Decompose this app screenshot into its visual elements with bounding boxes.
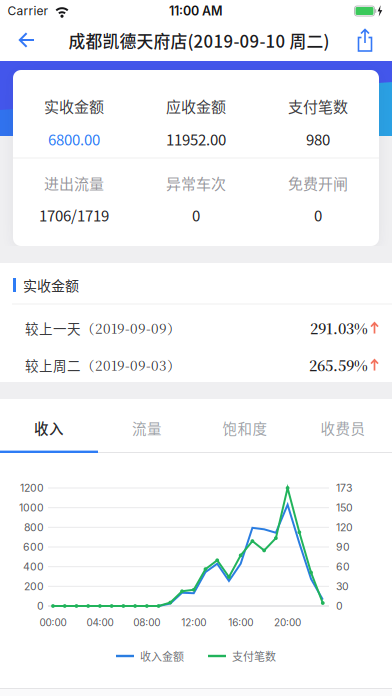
staticText: 异常车次 [166, 172, 226, 194]
button[interactable]: 饱和度 [196, 401, 294, 455]
staticText: 00:00 [39, 616, 66, 629]
staticText: 免费开闸 [288, 172, 348, 194]
staticText: 收费员 [320, 417, 365, 438]
staticText: 291.03% [310, 318, 368, 338]
staticText: 400 [23, 560, 44, 573]
staticText: 支付笔数 [288, 95, 348, 117]
staticText: 收入 [34, 417, 64, 438]
button[interactable]: Back [0, 21, 44, 61]
staticText: 08:00 [133, 616, 160, 629]
staticText: 600 [23, 541, 44, 553]
staticText: 0 [37, 600, 44, 612]
staticText: 90 [336, 541, 350, 553]
staticText: Carrier [7, 4, 48, 18]
staticText: 150 [336, 501, 353, 514]
staticText: 实收金额 [44, 95, 104, 117]
staticText: 1200 [20, 482, 44, 494]
staticText: 支付笔数 [232, 648, 276, 664]
staticText: 较上一天 [25, 318, 81, 338]
staticText: 收入金额 [140, 648, 184, 664]
staticText: 200 [24, 580, 44, 593]
staticText: 较上周二 [25, 355, 81, 375]
staticText: 04:00 [86, 616, 113, 629]
staticText: 进出流量 [44, 172, 104, 194]
staticText: 16:00 [228, 616, 253, 629]
staticText: 6800.00 [48, 128, 100, 150]
button[interactable]: 收费员 [294, 401, 392, 455]
staticText: 173 [336, 482, 352, 494]
button[interactable]: 流量 [98, 401, 196, 455]
button[interactable]: Share [345, 21, 385, 61]
staticText: 800 [24, 521, 44, 534]
staticText: 实收金额 [23, 275, 79, 295]
button[interactable]: 收入 [0, 401, 98, 455]
staticText: 12:00 [181, 616, 206, 629]
staticText: 30 [336, 580, 349, 593]
staticText: 980 [306, 128, 330, 150]
staticText: 1706/1719 [39, 204, 109, 226]
staticText: 0 [192, 204, 200, 226]
staticText: 0 [336, 600, 343, 612]
staticText: 11:00 AM [169, 3, 223, 18]
staticText: （2019-09-03） [81, 355, 181, 375]
staticText: 流量 [132, 417, 162, 438]
staticText: 成都凯德天府店(2019-09-10 周二) [68, 28, 329, 53]
staticText: 20:00 [274, 616, 301, 629]
staticText: 11952.00 [166, 128, 226, 150]
staticText: 60 [336, 560, 350, 573]
staticText: 1000 [19, 501, 44, 514]
staticText: 265.59% [309, 355, 368, 375]
staticText: 0 [314, 204, 322, 226]
staticText: 应收金额 [166, 95, 226, 117]
staticText: （2019-09-09） [81, 318, 181, 338]
staticText: 饱和度 [222, 417, 267, 438]
staticText: 120 [336, 521, 353, 534]
